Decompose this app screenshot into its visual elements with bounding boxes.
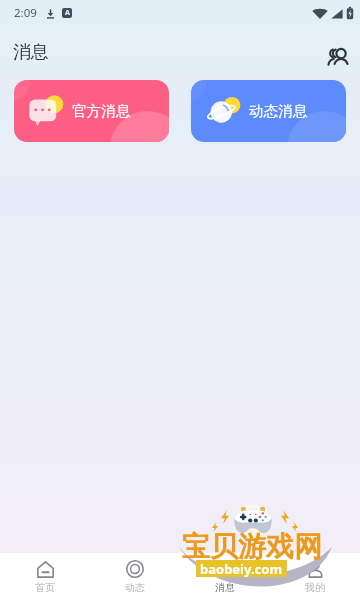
staticText: 我的 <box>305 581 325 594</box>
staticText: 官方消息 <box>72 102 131 120</box>
staticText: 消息 <box>13 41 49 64</box>
button[interactable]: Add friend <box>316 32 356 72</box>
staticText: 动态 <box>125 581 145 594</box>
button[interactable]: 我的 <box>270 553 360 600</box>
staticText: 宝贝游戏网 <box>182 529 322 564</box>
button[interactable]: 首页 <box>0 553 90 600</box>
staticText: baobeiy.com <box>200 560 283 577</box>
staticText: A <box>65 8 70 18</box>
staticText: 消息 <box>215 581 235 594</box>
staticText: 2:09 <box>14 5 37 21</box>
button[interactable]: 官方消息 <box>14 80 169 142</box>
button[interactable]: 动态消息 <box>191 80 346 142</box>
staticText: 首页 <box>35 581 55 594</box>
staticText: 动态消息 <box>249 102 308 120</box>
button[interactable]: 动态 <box>90 553 180 600</box>
button[interactable]: 消息 <box>180 553 270 600</box>
